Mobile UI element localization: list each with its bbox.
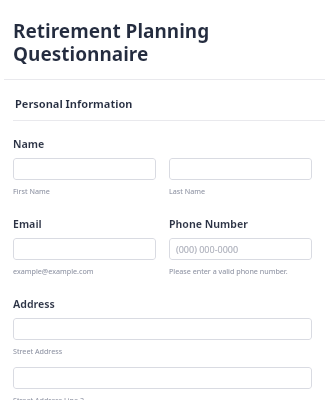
button[interactable] — [13, 238, 156, 260]
button[interactable] — [13, 318, 312, 340]
staticText: Address — [13, 297, 55, 311]
staticText: Please enter a valid phone number. — [169, 266, 288, 276]
staticText: (000) 000-0000 — [176, 243, 239, 255]
button[interactable]: (000) 000-0000 — [169, 238, 312, 260]
button[interactable] — [13, 158, 156, 180]
staticText: Street Address — [13, 346, 63, 356]
staticText: Name — [13, 137, 45, 151]
staticText: Retirement Planning Questionnaire — [13, 18, 315, 67]
staticText: Street Address Line 2 — [13, 395, 85, 400]
button[interactable] — [13, 367, 312, 389]
staticText: Last Name — [169, 186, 205, 196]
staticText: example@example.com — [13, 266, 94, 276]
button[interactable] — [169, 158, 312, 180]
staticText: Email — [13, 217, 42, 231]
staticText: Phone Number — [169, 217, 248, 231]
staticText: Personal Information — [15, 96, 133, 111]
staticText: First Name — [13, 186, 50, 196]
